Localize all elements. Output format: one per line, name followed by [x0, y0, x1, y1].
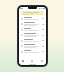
button[interactable]: Item icon	[19, 49, 46, 54]
button[interactable]: Item icon	[19, 43, 46, 49]
button[interactable]: Profile	[40, 60, 44, 62]
button[interactable]: Item icon	[19, 38, 46, 43]
button[interactable]: Search	[30, 60, 34, 62]
button[interactable]: Item icon	[19, 27, 46, 32]
button[interactable]: Item icon	[19, 16, 46, 21]
button[interactable]: Home	[21, 60, 25, 62]
button[interactable]	[21, 11, 44, 15]
button[interactable]: Item icon	[19, 32, 46, 38]
button[interactable]: Item icon	[19, 21, 46, 27]
